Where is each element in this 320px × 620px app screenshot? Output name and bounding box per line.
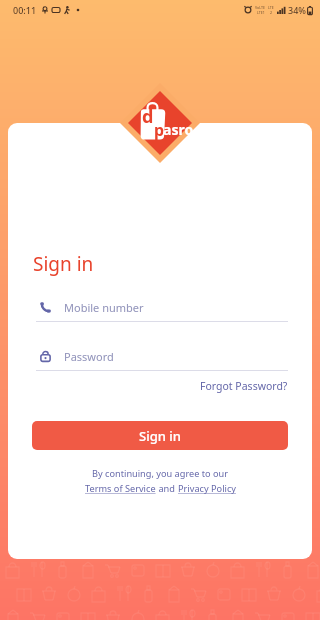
staticText: LTE	[268, 5, 274, 10]
staticText: and	[156, 482, 178, 495]
other: Mobile number	[40, 302, 51, 313]
staticText: Sign in	[139, 427, 181, 445]
staticText: By continuing, you agree to our	[92, 467, 229, 480]
button[interactable]: Privacy Policy	[178, 482, 236, 495]
staticText: asro	[163, 120, 194, 139]
staticText: Terms of Service	[85, 482, 156, 495]
staticText: p	[154, 119, 165, 141]
staticText: LTE1	[257, 10, 265, 15]
staticText: Mobile number	[64, 300, 144, 315]
staticText: Forgot Password?	[200, 379, 288, 393]
staticText: 2	[270, 10, 273, 15]
button[interactable]: Sign in	[32, 421, 288, 450]
staticText: Password	[64, 349, 114, 364]
button[interactable]: Forgot Password?	[200, 379, 288, 393]
staticText: d	[142, 104, 154, 129]
staticText: 34%	[288, 4, 306, 16]
other: Password	[40, 351, 51, 362]
staticText: Sign in	[33, 251, 94, 277]
staticText: VoLTE	[255, 5, 266, 10]
staticText: Privacy Policy	[178, 482, 236, 495]
staticText: 00:11	[13, 4, 37, 16]
button[interactable]: Terms of Service	[85, 482, 156, 495]
